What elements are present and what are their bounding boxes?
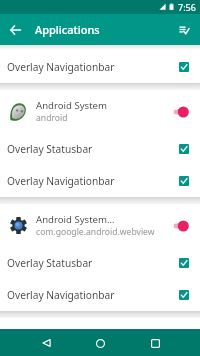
staticText: Android System… (36, 213, 115, 226)
staticText: Android System (36, 99, 108, 112)
staticText: com.google.android (36, 340, 118, 352)
button[interactable]: Android System WebView (0, 318, 200, 356)
button[interactable]: Recents (144, 332, 166, 354)
staticText: Overlay Navigationbar (7, 60, 179, 74)
button[interactable]: Back (2, 17, 28, 43)
button[interactable]: Android System (0, 90, 200, 133)
staticText: Android System WebView (36, 327, 151, 340)
button[interactable]: Overlay Statusbar (0, 247, 200, 279)
button[interactable]: Select all (171, 17, 197, 43)
staticText: Overlay Statusbar (7, 256, 179, 270)
staticText: Applications (35, 22, 100, 37)
button[interactable]: Overlay Statusbar (0, 133, 200, 165)
staticText: Overlay Navigationbar (7, 288, 179, 302)
button[interactable]: Overlay Navigationbar (0, 51, 200, 83)
button[interactable]: Overlay Navigationbar (0, 279, 200, 311)
button[interactable]: Home (89, 332, 111, 354)
button[interactable]: Back (35, 332, 57, 354)
button[interactable]: Toggle overlay (172, 220, 189, 232)
button[interactable]: Overlay Navigationbar (0, 165, 200, 197)
staticText: android (36, 112, 68, 124)
staticText: Overlay Navigationbar (7, 174, 179, 188)
staticText: com.google.android.webview (36, 226, 155, 238)
button[interactable]: Android System… (0, 204, 200, 247)
staticText: 7:56 (178, 1, 196, 13)
button[interactable]: Toggle overlay (172, 106, 189, 118)
staticText: Overlay Statusbar (7, 142, 179, 156)
